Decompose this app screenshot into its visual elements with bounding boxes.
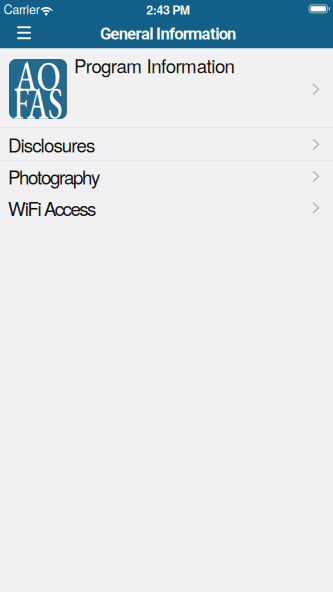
button[interactable]: Photography [0,161,333,192]
staticText: Photography [8,163,100,190]
button[interactable]: Menu [0,21,31,44]
button[interactable]: AO [0,48,333,127]
staticText: General Information [100,24,236,43]
staticText: Disclosures [8,131,95,158]
staticText: WiFi Access [8,194,96,221]
staticText: AO [7,48,69,104]
staticText: 2:43 PM [146,1,190,18]
button[interactable]: WiFi Access [0,193,333,223]
staticText: FAS [2,74,74,132]
staticText: Program Information [74,52,235,79]
staticText: Carrier [3,0,40,18]
button[interactable]: Disclosures [0,129,333,160]
